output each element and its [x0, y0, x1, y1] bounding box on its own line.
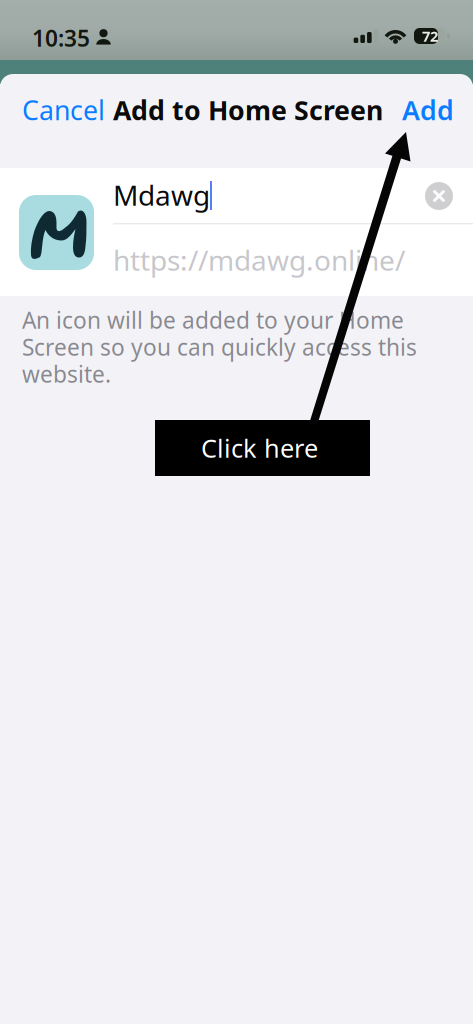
staticText: 72 [422, 26, 438, 46]
staticText: Click here [201, 431, 318, 465]
button[interactable]: Cancel [22, 92, 112, 128]
staticText: Add to Home Screen [113, 92, 383, 128]
staticText: An icon will be added to your Home [22, 305, 404, 335]
staticText: Add [402, 92, 454, 128]
staticText: Mdawg [113, 176, 210, 214]
button[interactable]: Clear text [425, 182, 453, 210]
staticText: Screen so you can quickly access this [22, 332, 417, 362]
staticText: website. [22, 359, 111, 389]
staticText: Cancel [22, 92, 105, 128]
staticText: https://mdawg.online/ [113, 241, 405, 279]
button[interactable]: Add [402, 92, 457, 128]
staticText: 10:35 [32, 23, 90, 53]
